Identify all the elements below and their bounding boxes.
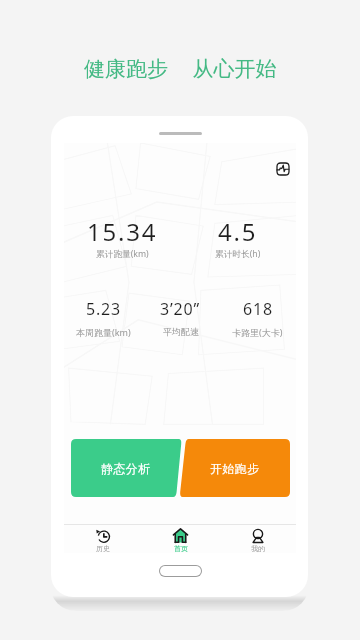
staticText: 静态分析 [101,461,151,476]
button[interactable]: 首页 [142,526,219,553]
staticText: 健康跑步 从心开始 [84,54,277,83]
button[interactable]: 静态分析 [71,439,180,497]
staticText: 累计时长(h) [215,248,261,260]
staticText: 历史 [96,544,110,553]
button[interactable]: 我的 [219,527,296,553]
staticText: 平均配速 [163,326,199,337]
button[interactable]: Heart rate [271,157,295,181]
staticText: 3’20” [160,298,201,320]
staticText: 我的 [251,544,265,553]
staticText: 4.5 [218,215,258,248]
staticText: 首页 [174,544,188,553]
staticText: 累计跑量(km) [96,248,149,260]
button[interactable]: 历史 [64,527,142,553]
staticText: 15.34 [87,215,158,248]
staticText: 618 [243,298,273,320]
staticText: 本周跑量(km) [76,326,131,338]
button[interactable]: 开始跑步 [180,439,290,497]
staticText: 开始跑步 [210,461,260,476]
staticText: 卡路里(大卡) [232,326,283,338]
staticText: 5.23 [86,298,121,320]
